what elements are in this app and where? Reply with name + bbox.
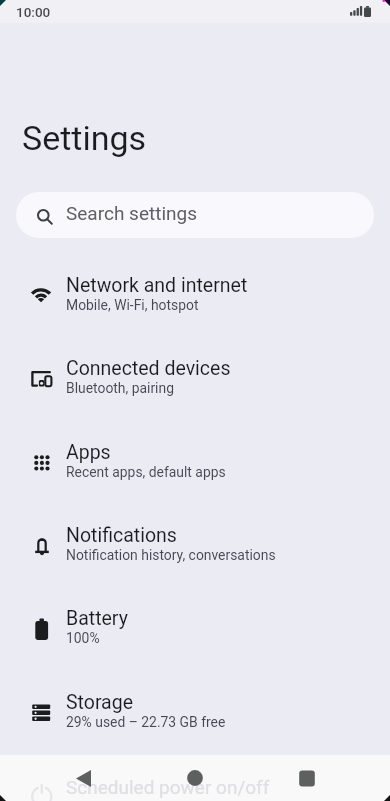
staticText: Notification history, conversations [66,547,276,563]
staticText: Notifications [66,524,177,547]
staticText: Mobile, Wi-Fi, hotspot [66,297,199,313]
staticText: Bluetooth, pairing [66,380,174,396]
staticText: Settings [22,118,147,158]
staticText: Search settings [66,202,197,224]
button[interactable] [68,763,98,793]
staticText: Recent apps, default apps [66,464,226,480]
button[interactable]: Search settings [16,192,374,238]
button[interactable]: Apps [0,421,390,504]
staticText: 100% [66,630,100,646]
staticText: 29% used – 22.73 GB free [66,714,226,730]
staticText: Network and internet [66,274,248,297]
button[interactable] [292,763,322,793]
staticText: Scheduled power on/off [66,776,270,798]
staticText: Battery [66,607,128,630]
button[interactable]: Connected devices [0,337,390,420]
staticText: 10:00 [16,4,51,20]
staticText: Apps [66,441,111,464]
button[interactable] [180,763,210,793]
staticText: Connected devices [66,357,231,380]
button[interactable]: Network and internet [0,254,390,337]
staticText: Storage [66,691,134,714]
button[interactable]: Battery [0,587,390,670]
button[interactable]: Notifications [0,504,390,587]
button[interactable]: Storage [0,671,390,754]
